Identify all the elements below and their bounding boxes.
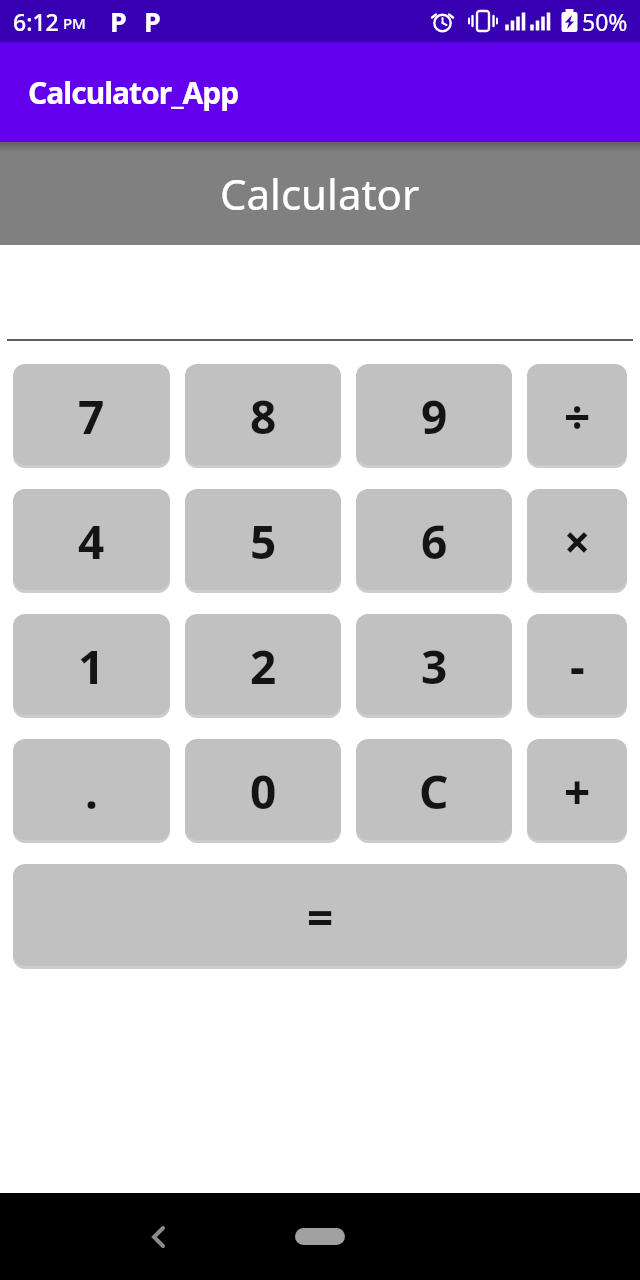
staticText: 1 (78, 635, 105, 698)
staticText: + (564, 760, 591, 823)
staticText: 9 (421, 385, 448, 448)
button[interactable]: . (13, 739, 170, 840)
staticText: 6 (421, 510, 448, 573)
button[interactable]: × (527, 489, 627, 590)
staticText: P (144, 3, 161, 40)
staticText: = (307, 886, 334, 949)
staticText: 3 (421, 635, 448, 698)
staticText: 4 (78, 510, 105, 573)
button[interactable] (295, 1228, 345, 1245)
staticText: C (419, 760, 449, 823)
button[interactable]: 8 (185, 364, 341, 465)
button[interactable]: 0 (185, 739, 341, 840)
staticText: ÷ (564, 385, 591, 448)
staticText: P (110, 3, 127, 40)
staticText: - (570, 635, 585, 698)
staticText: 8 (250, 385, 277, 448)
button[interactable]: 9 (356, 364, 512, 465)
button[interactable]: 6 (356, 489, 512, 590)
button[interactable]: 5 (185, 489, 341, 590)
staticText: 7 (78, 385, 105, 448)
button[interactable]: C (356, 739, 512, 840)
staticText: 5 (250, 510, 277, 573)
button[interactable]: = (13, 864, 627, 966)
staticText: 6:12 (13, 6, 59, 37)
staticText: × (564, 510, 591, 573)
button[interactable]: 2 (185, 614, 341, 715)
staticText: Calculator (220, 165, 420, 222)
button[interactable]: - (527, 614, 627, 715)
staticText: Calculator_App (28, 72, 239, 113)
button[interactable]: 4 (13, 489, 170, 590)
staticText: PM (59, 13, 86, 33)
button[interactable]: ÷ (527, 364, 627, 465)
staticText: 50% (582, 6, 628, 37)
button[interactable]: 1 (13, 614, 170, 715)
button[interactable]: + (527, 739, 627, 840)
staticText: 2 (250, 635, 277, 698)
staticText: 0 (250, 760, 277, 823)
staticText: . (85, 760, 98, 823)
button[interactable]: 3 (356, 614, 512, 715)
button[interactable] (138, 1216, 180, 1258)
button[interactable]: 7 (13, 364, 170, 465)
